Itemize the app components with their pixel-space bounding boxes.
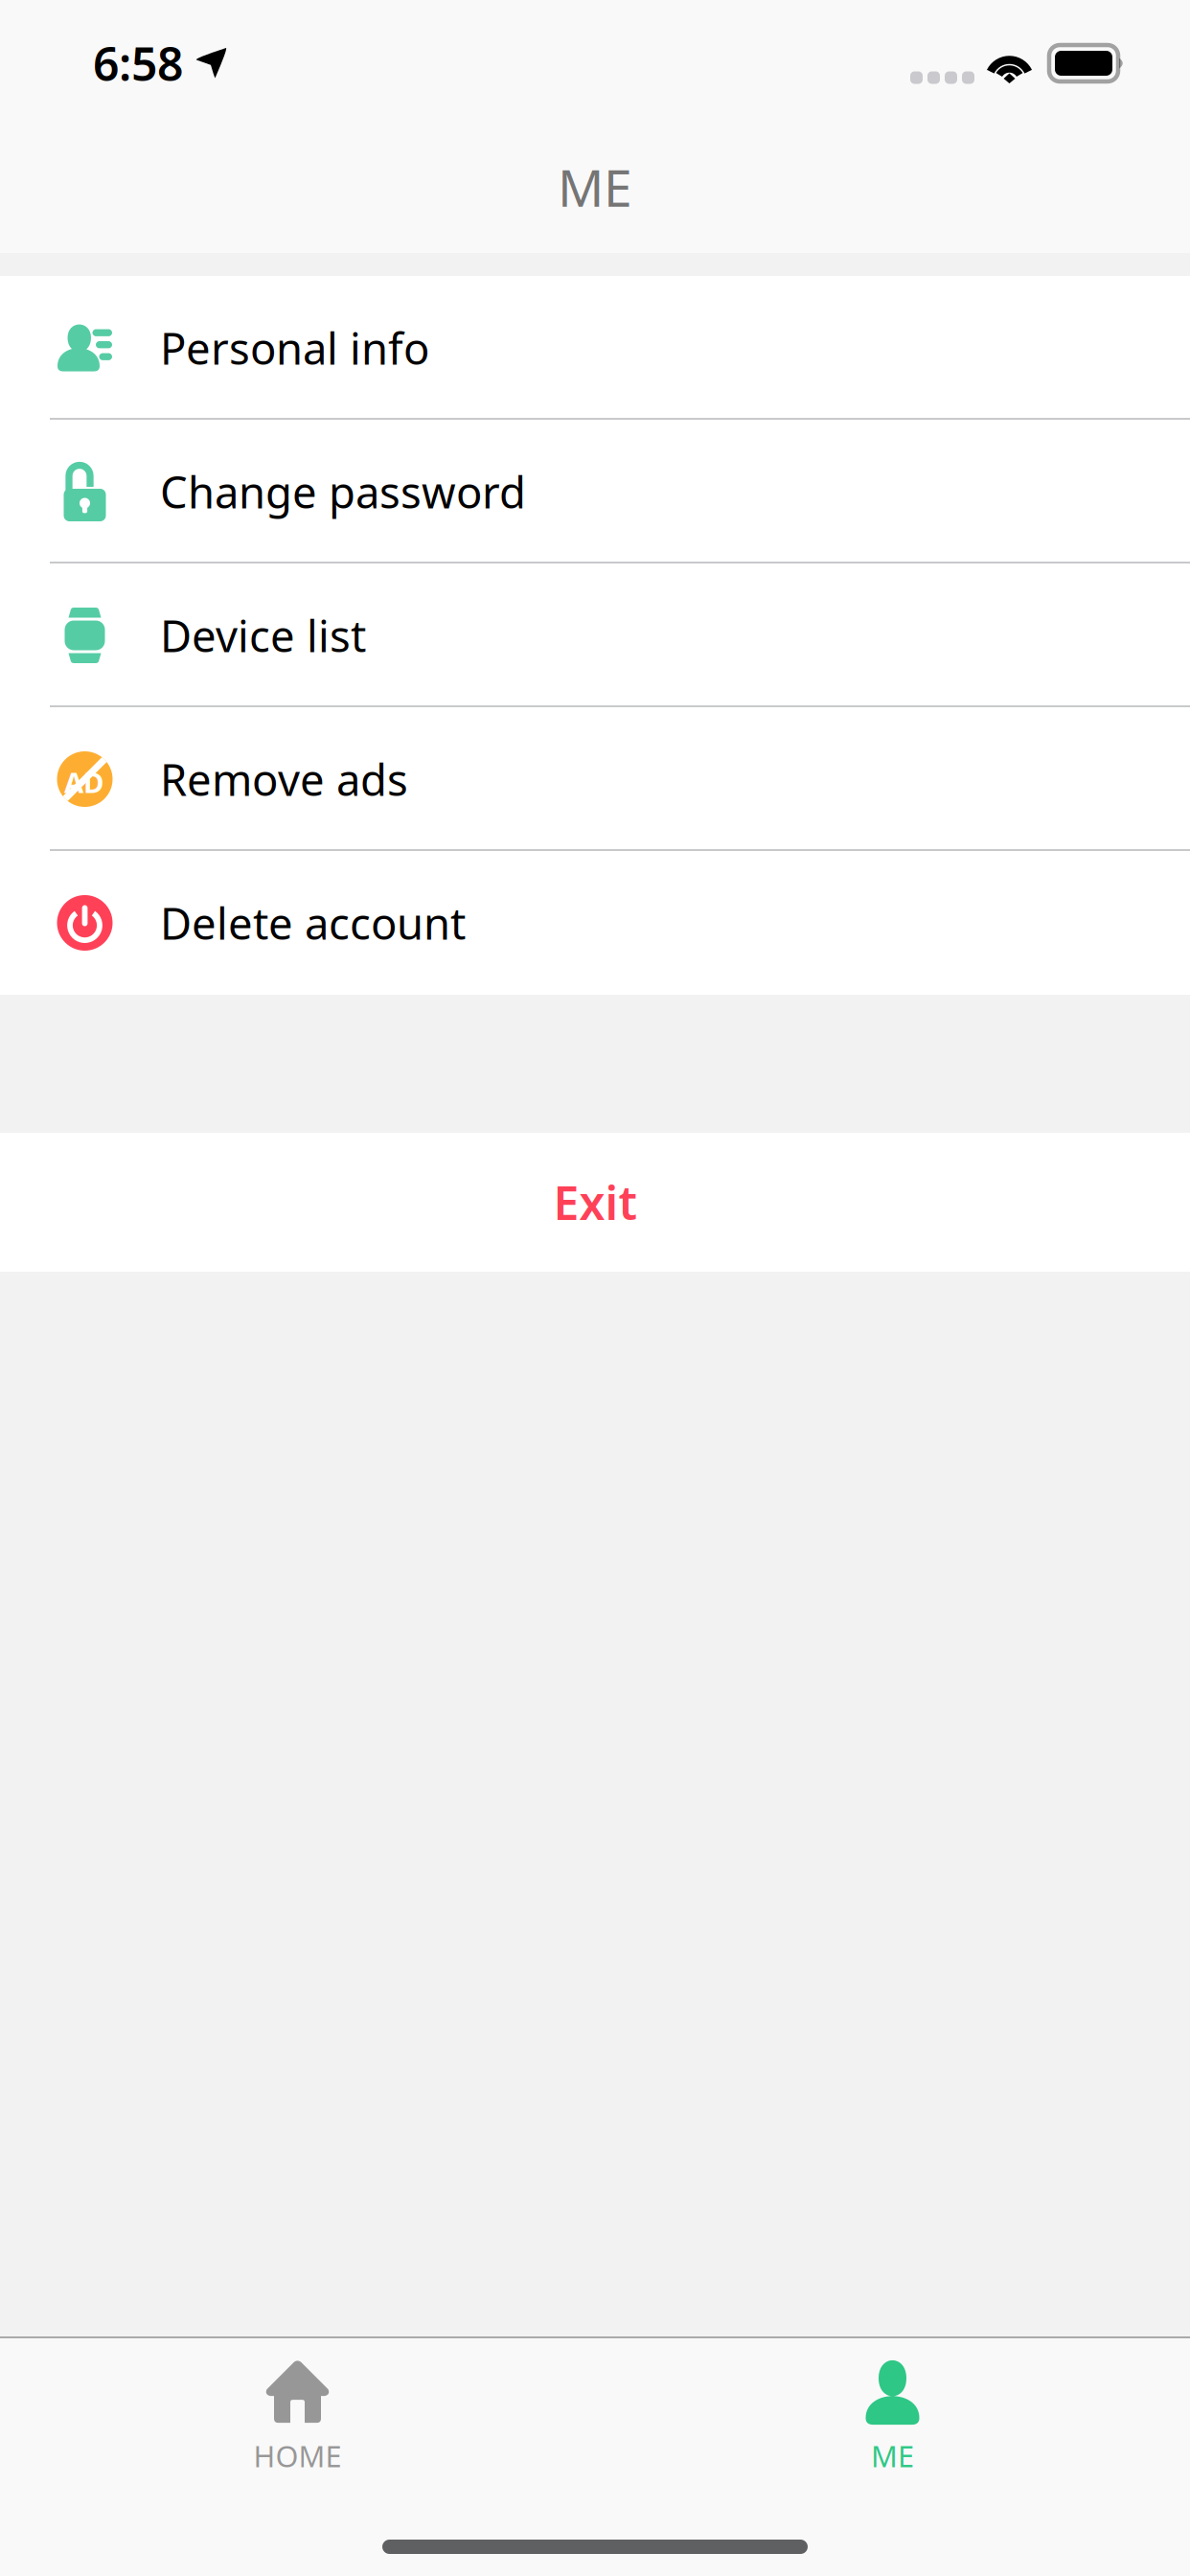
staticText: Delete account bbox=[160, 894, 466, 952]
staticText: Remove ads bbox=[160, 750, 408, 808]
staticText: Change password bbox=[160, 463, 526, 520]
staticText: Personal info bbox=[160, 319, 429, 377]
staticText: 6:58 bbox=[93, 33, 183, 94]
button[interactable]: ME bbox=[595, 2354, 1190, 2472]
staticText: Exit bbox=[553, 1172, 637, 1233]
button[interactable]: AD bbox=[0, 707, 1190, 851]
staticText: ME bbox=[871, 2436, 914, 2475]
staticText: AD bbox=[64, 763, 103, 801]
button[interactable]: Change password bbox=[0, 420, 1190, 563]
button[interactable]: Personal info bbox=[0, 276, 1190, 420]
staticText: ME bbox=[558, 153, 632, 221]
button[interactable]: Delete account bbox=[0, 851, 1190, 995]
button[interactable]: Device list bbox=[0, 563, 1190, 707]
button[interactable]: HOME bbox=[0, 2354, 595, 2472]
staticText: Device list bbox=[160, 607, 366, 664]
staticText: HOME bbox=[253, 2436, 342, 2475]
button[interactable]: Exit bbox=[0, 1133, 1190, 1272]
